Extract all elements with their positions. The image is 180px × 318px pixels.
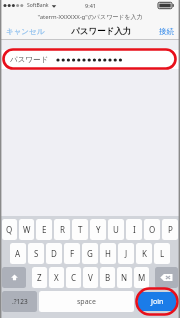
staticText: H (105, 248, 111, 259)
button[interactable]: キャンセル (0, 23, 51, 40)
button[interactable]: U (108, 219, 124, 240)
button[interactable]: P (162, 219, 178, 240)
staticText: T (78, 224, 83, 235)
staticText: V (88, 272, 93, 283)
button[interactable]: N (117, 267, 132, 288)
button[interactable]: G (82, 243, 98, 264)
staticText: U (113, 224, 119, 235)
staticText: N (121, 272, 128, 283)
staticText: X (54, 272, 59, 283)
button[interactable]: I (126, 219, 142, 240)
staticText: L (160, 248, 165, 259)
staticText: E (42, 224, 47, 235)
button[interactable]: L (154, 243, 170, 264)
staticText: 9:41 (85, 2, 96, 9)
button[interactable]: Q (2, 219, 17, 240)
button[interactable]: 接続 (153, 23, 180, 40)
button[interactable]: E (36, 219, 52, 240)
button[interactable]: D (46, 243, 62, 264)
button[interactable]: F (64, 243, 80, 264)
button[interactable]: B (100, 267, 115, 288)
staticText: D (51, 248, 57, 259)
button[interactable]: Join (138, 292, 176, 311)
staticText: G (87, 248, 93, 259)
button[interactable]: X (49, 267, 64, 288)
button[interactable]: M (134, 267, 149, 288)
staticText: .?123 (12, 297, 28, 306)
button[interactable]: パスワード (0, 50, 180, 69)
staticText: P (168, 224, 173, 235)
staticText: B (105, 272, 111, 283)
button[interactable]: S (28, 243, 44, 264)
staticText: パスワード入力 (71, 26, 132, 37)
staticText: R (60, 224, 65, 235)
staticText: space (77, 297, 96, 307)
staticText: W (23, 224, 31, 235)
button[interactable]: .?123 (2, 291, 37, 312)
button[interactable]: W (19, 219, 34, 240)
button[interactable]: Z (32, 267, 47, 288)
button[interactable]: V (83, 267, 98, 288)
staticText: SoftBank (27, 2, 49, 9)
staticText: J (125, 248, 128, 259)
staticText: O (149, 224, 156, 235)
button[interactable]: space (39, 291, 134, 312)
staticText: S (34, 248, 39, 259)
staticText: "aterm-XXXXXX-g"のパスワードを入力 (37, 13, 143, 21)
staticText: K (142, 248, 147, 259)
button[interactable]: T (72, 219, 88, 240)
staticText: 接続 (159, 27, 174, 36)
staticText: A (15, 248, 21, 259)
button[interactable]: A (10, 243, 26, 264)
staticText: Z (37, 272, 42, 283)
button[interactable]: K (136, 243, 152, 264)
button[interactable]: Y (90, 219, 106, 240)
button[interactable]: R (54, 219, 70, 240)
staticText: パスワード (10, 55, 49, 64)
staticText: C (71, 272, 77, 283)
button[interactable]: Delete (155, 267, 178, 288)
button[interactable]: O (144, 219, 160, 240)
button[interactable]: C (66, 267, 81, 288)
staticText: M (138, 272, 146, 283)
button[interactable]: Shift (2, 267, 26, 288)
staticText: I (133, 224, 136, 235)
button[interactable]: J (118, 243, 134, 264)
staticText: キャンセル (6, 27, 45, 36)
staticText: Y (96, 224, 101, 235)
staticText: F (70, 248, 75, 259)
staticText: Q (6, 224, 13, 235)
button[interactable]: H (100, 243, 116, 264)
staticText: Join (151, 297, 164, 307)
